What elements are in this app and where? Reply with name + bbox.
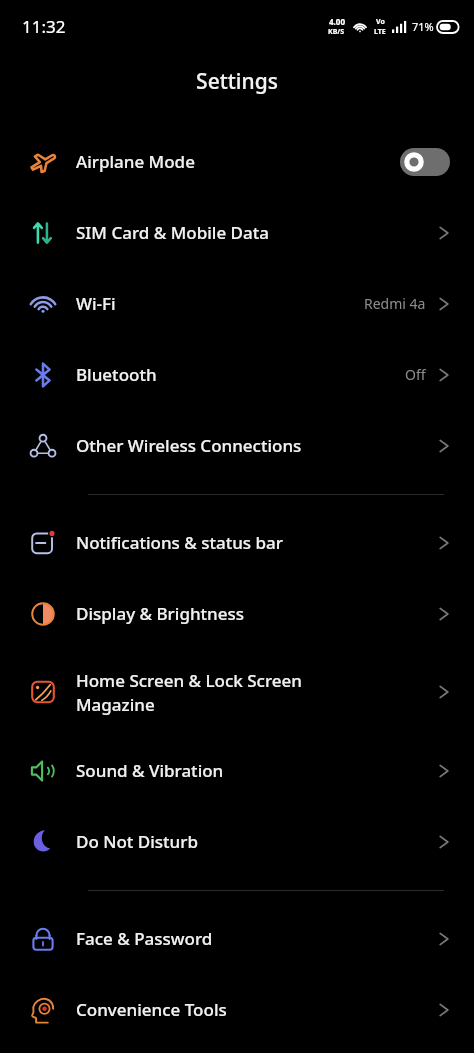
staticText: Settings [196, 67, 278, 96]
button[interactable]: Convenience Tools [0, 974, 474, 1045]
button[interactable]: Notifications & status bar [0, 507, 474, 578]
staticText: 4.00 [329, 16, 345, 27]
button[interactable]: Sound & Vibration [0, 735, 474, 806]
staticText: Off [405, 365, 426, 384]
staticText: LTE [374, 27, 386, 37]
staticText: Bluetooth [76, 363, 405, 386]
staticText: Face & Password [76, 927, 438, 950]
button[interactable]: Face & Password [0, 903, 474, 974]
staticText: Do Not Disturb [76, 830, 438, 853]
button[interactable]: Display & Brightness [0, 578, 474, 649]
button[interactable]: Do Not Disturb [0, 806, 474, 877]
staticText: Wi-Fi [76, 292, 364, 315]
button[interactable]: Home Screen & Lock Screen Magazine [0, 649, 474, 735]
staticText: Display & Brightness [76, 602, 438, 625]
button[interactable]: Airplane Mode toggle [400, 148, 450, 176]
staticText: Vo [376, 17, 385, 27]
staticText: Notifications & status bar [76, 531, 438, 554]
staticText: 71% [412, 19, 434, 34]
staticText: Sound & Vibration [76, 759, 438, 782]
button[interactable]: Wi-Fi [0, 268, 474, 339]
staticText: Airplane Mode [76, 150, 400, 173]
staticText: 11:32 [22, 15, 66, 38]
staticText: Redmi 4a [364, 294, 426, 313]
staticText: Home Screen & Lock Screen Magazine [76, 669, 438, 716]
button[interactable]: SIM Card & Mobile Data [0, 197, 474, 268]
staticText: Convenience Tools [76, 998, 438, 1021]
staticText: SIM Card & Mobile Data [76, 221, 438, 244]
staticText: KB/S [328, 27, 345, 37]
button[interactable]: Bluetooth [0, 339, 474, 410]
button[interactable]: Other Wireless Connections [0, 410, 474, 481]
staticText: Other Wireless Connections [76, 434, 438, 457]
button[interactable]: Airplane Mode [0, 126, 474, 197]
